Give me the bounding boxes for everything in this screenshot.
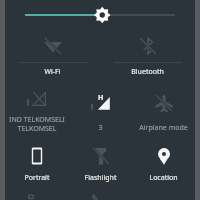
- staticText: Airplane mode: [132, 123, 195, 133]
- button[interactable]: [5, 0, 195, 30]
- staticText: Wi-Fi: [5, 67, 100, 77]
- button[interactable]: Portrait: [5, 138, 69, 188]
- button[interactable]: Wi-Fi: [5, 30, 100, 82]
- staticText: 3: [69, 123, 132, 133]
- button[interactable]: Mobile network: [5, 82, 69, 138]
- button[interactable]: Flashlight: [69, 138, 132, 188]
- button[interactable]: Bluetooth: [100, 30, 195, 82]
- staticText: Bluetooth: [100, 67, 195, 77]
- staticText: Portrait: [5, 173, 69, 183]
- staticText: Flashlight: [69, 173, 132, 183]
- button[interactable]: Airplane mode: [132, 82, 195, 138]
- staticText: IND TELKOMSELI TELKOMSEL: [5, 115, 69, 133]
- button[interactable]: Data: [69, 82, 132, 138]
- staticText: Location: [132, 173, 195, 183]
- staticText: H: [98, 93, 104, 103]
- button[interactable]: Location: [132, 138, 195, 188]
